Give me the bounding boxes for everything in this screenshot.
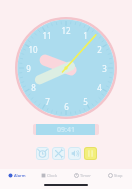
button[interactable]: Clock (33, 169, 66, 182)
staticText: 4 (97, 82, 102, 93)
staticText: Alarm (14, 173, 26, 178)
staticText: 2 (97, 44, 102, 55)
staticText: 5 (83, 96, 88, 107)
staticText: Clock (47, 173, 58, 178)
button[interactable]: Stop (99, 169, 132, 182)
staticText: 10 (28, 44, 38, 55)
staticText: 11 (42, 30, 52, 41)
button[interactable]: Pause (84, 147, 97, 160)
button[interactable]: Shuffle (52, 147, 65, 160)
button[interactable]: Analog clock, 9:41 (15, 17, 117, 119)
button[interactable]: Time slider 09:41 (33, 124, 99, 135)
staticText: 09:41 (57, 125, 75, 135)
button[interactable]: Alarm (36, 147, 49, 160)
staticText: 12 (61, 25, 71, 36)
staticText: 8 (31, 82, 36, 93)
button[interactable]: Timer (66, 169, 99, 182)
button[interactable]: Volume (68, 147, 81, 160)
button[interactable]: Alarm (0, 169, 33, 182)
staticText: Stop (114, 173, 123, 178)
staticText: 3 (102, 63, 107, 74)
staticText: Timer (80, 173, 91, 178)
staticText: 7 (45, 96, 50, 107)
staticText: 9 (26, 63, 31, 74)
staticText: 1 (83, 30, 88, 41)
staticText: 6 (64, 101, 69, 112)
